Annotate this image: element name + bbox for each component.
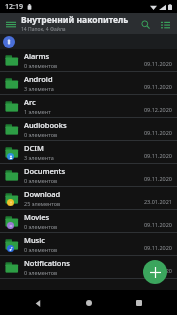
staticText: 0 элементов bbox=[24, 177, 58, 184]
button[interactable]: Search bbox=[135, 14, 155, 34]
staticText: 09.11.2020 bbox=[143, 129, 172, 136]
staticText: 09.11.2020 bbox=[143, 175, 172, 182]
staticText: Arc bbox=[24, 97, 36, 107]
staticText: Android bbox=[24, 74, 53, 84]
staticText: 09.11.2020 bbox=[143, 221, 172, 228]
staticText: 09.11.2020 bbox=[143, 152, 172, 159]
button[interactable]: Music bbox=[0, 233, 177, 256]
button[interactable]: Documents bbox=[0, 164, 177, 187]
button[interactable]: Recent apps bbox=[127, 291, 151, 315]
button[interactable]: Arc bbox=[0, 95, 177, 118]
staticText: 25 элементов bbox=[24, 200, 61, 207]
staticText: 09.11.2020 bbox=[143, 60, 172, 67]
staticText: 1 элемент bbox=[24, 108, 51, 115]
staticText: 3 элемента bbox=[24, 85, 54, 92]
button[interactable] bbox=[0, 34, 177, 49]
button[interactable]: Back bbox=[26, 291, 50, 315]
staticText: Audiobooks bbox=[24, 120, 67, 130]
staticText: Movies bbox=[24, 212, 50, 222]
staticText: Music bbox=[24, 235, 45, 245]
button[interactable]: Android bbox=[0, 72, 177, 95]
staticText: 0 элементов bbox=[24, 223, 58, 230]
staticText: 0 элементов bbox=[24, 246, 58, 253]
staticText: DCIM bbox=[24, 143, 44, 153]
button[interactable]: DCIM bbox=[0, 141, 177, 164]
button[interactable]: Add bbox=[143, 260, 167, 284]
button[interactable]: Alarms bbox=[0, 49, 177, 72]
staticText: 09.11.2020 bbox=[143, 244, 172, 251]
staticText: 09.11.2020 bbox=[143, 267, 172, 274]
button[interactable]: Audiobooks bbox=[0, 118, 177, 141]
staticText: 0 элементов bbox=[24, 62, 58, 69]
button[interactable]: Home bbox=[77, 291, 101, 315]
staticText: Alarms bbox=[24, 51, 50, 61]
staticText: 23.01.2021 bbox=[143, 198, 172, 205]
staticText: 0 элементов bbox=[24, 269, 58, 276]
staticText: Documents bbox=[24, 166, 66, 176]
staticText: Notifications bbox=[24, 258, 70, 268]
staticText: 0 элементов bbox=[24, 131, 58, 138]
button[interactable]: Change view bbox=[155, 14, 175, 34]
staticText: Download bbox=[24, 189, 61, 199]
staticText: 09.12.2020 bbox=[143, 106, 172, 113]
staticText: 3 элемента bbox=[24, 154, 54, 161]
staticText: 12:19 bbox=[5, 2, 23, 12]
staticText: Внутренний накопитель bbox=[21, 14, 129, 26]
staticText: 14 Папок, 4 Файла bbox=[21, 26, 66, 33]
staticText: 09.11.2020 bbox=[143, 83, 172, 90]
button[interactable]: Download bbox=[0, 187, 177, 210]
button[interactable]: Notifications bbox=[0, 256, 177, 279]
button[interactable]: Open navigation menu bbox=[0, 13, 21, 34]
button[interactable]: Movies bbox=[0, 210, 177, 233]
